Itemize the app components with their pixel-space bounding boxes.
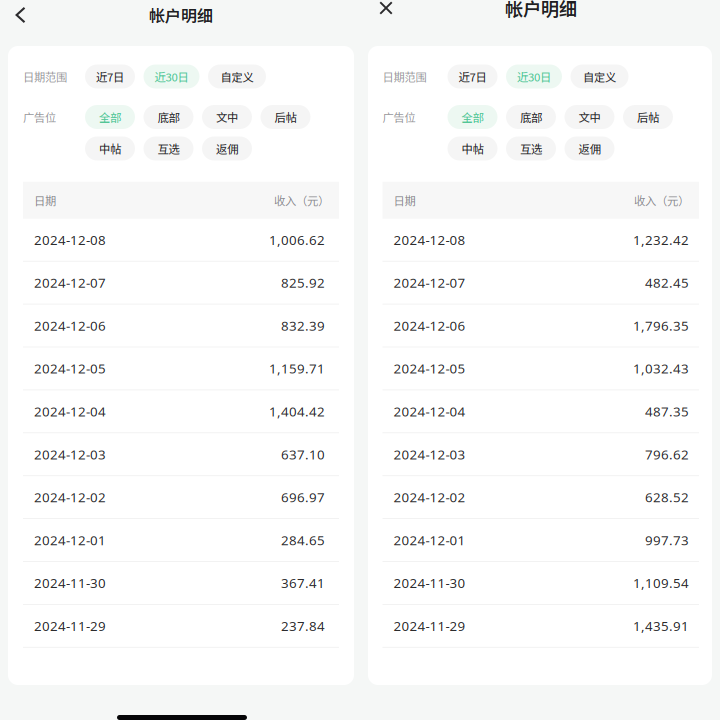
button[interactable]: 近7日 [85, 64, 135, 88]
staticText: 1,109.54 [633, 574, 689, 592]
staticText: 中帖 [99, 140, 121, 157]
staticText: 自定义 [220, 68, 253, 85]
button[interactable]: 底部 [143, 105, 193, 129]
staticText: 1,006.62 [269, 231, 325, 249]
button[interactable]: 文中 [564, 105, 614, 129]
staticText: 日期范围 [382, 68, 426, 85]
button[interactable]: 自定义 [570, 64, 628, 88]
staticText: 返佣 [578, 140, 600, 157]
button[interactable]: 近30日 [506, 64, 562, 88]
staticText: 2024-12-03 [34, 445, 106, 463]
staticText: 2024-12-01 [393, 531, 465, 549]
button[interactable]: 互选 [506, 136, 556, 160]
button[interactable]: 全部 [85, 105, 135, 129]
button[interactable]: 近30日 [143, 64, 199, 88]
staticText: 收入（元） [274, 192, 329, 208]
staticText: 796.62 [645, 445, 689, 463]
button[interactable]: Close [371, 0, 401, 21]
staticText: 637.10 [281, 445, 325, 463]
staticText: 1,404.42 [269, 402, 325, 420]
staticText: 底部 [520, 109, 542, 125]
staticText: 2024-12-02 [34, 488, 106, 506]
staticText: 2024-12-03 [393, 445, 465, 463]
staticText: 2024-11-29 [393, 617, 465, 635]
staticText: 2024-12-05 [34, 359, 106, 378]
staticText: 1,796.35 [633, 316, 689, 335]
staticText: 后帖 [637, 109, 659, 125]
staticText: 全部 [461, 109, 483, 125]
staticText: 日期范围 [23, 68, 67, 85]
staticText: 近7日 [458, 68, 486, 85]
staticText: 2024-12-08 [34, 231, 106, 249]
staticText: 帐户明细 [505, 0, 577, 21]
staticText: 互选 [520, 140, 542, 157]
staticText: 2024-12-07 [393, 274, 465, 292]
button[interactable]: 全部 [447, 105, 497, 129]
staticText: 底部 [157, 109, 179, 125]
staticText: 日期 [34, 192, 56, 208]
button[interactable]: 自定义 [208, 64, 266, 88]
button[interactable]: 中帖 [85, 136, 135, 160]
staticText: 近30日 [517, 68, 551, 85]
staticText: 825.92 [281, 274, 325, 292]
staticText: 2024-11-29 [34, 617, 106, 635]
staticText: 2024-12-02 [393, 488, 465, 506]
staticText: 2024-11-30 [34, 574, 106, 592]
staticText: 2024-12-01 [34, 531, 106, 549]
staticText: 互选 [157, 140, 179, 157]
staticText: 2024-11-30 [393, 574, 465, 592]
staticText: 返佣 [216, 140, 238, 157]
staticText: 237.84 [281, 617, 325, 635]
staticText: 482.45 [645, 274, 689, 292]
staticText: 近30日 [154, 68, 188, 85]
button[interactable]: 互选 [143, 136, 193, 160]
staticText: 全部 [99, 109, 121, 125]
staticText: 2024-12-06 [393, 316, 465, 335]
staticText: 997.73 [645, 531, 689, 549]
staticText: 近7日 [96, 68, 124, 85]
button[interactable]: 中帖 [447, 136, 497, 160]
staticText: 487.35 [645, 402, 689, 420]
staticText: 1,032.43 [633, 359, 689, 378]
staticText: 广告位 [382, 109, 415, 125]
staticText: 628.52 [645, 488, 689, 506]
staticText: 2024-12-06 [34, 316, 106, 335]
staticText: 2024-12-08 [393, 231, 465, 249]
staticText: 广告位 [23, 109, 56, 125]
staticText: 收入（元） [634, 192, 689, 208]
staticText: 367.41 [281, 574, 325, 592]
button[interactable]: 近7日 [447, 64, 497, 88]
staticText: 帐户明细 [149, 3, 213, 27]
staticText: 1,435.91 [633, 617, 689, 635]
staticText: 后帖 [274, 109, 296, 125]
staticText: 1,159.71 [269, 359, 325, 378]
button[interactable]: 底部 [506, 105, 556, 129]
staticText: 自定义 [583, 68, 616, 85]
staticText: 2024-12-04 [34, 402, 106, 420]
staticText: 文中 [216, 109, 238, 125]
button[interactable]: 返佣 [202, 136, 252, 160]
button[interactable]: 文中 [202, 105, 252, 129]
button[interactable]: 后帖 [260, 105, 310, 129]
staticText: 284.65 [281, 531, 325, 549]
staticText: 832.39 [281, 316, 325, 335]
staticText: 1,232.42 [633, 231, 689, 249]
button[interactable]: 后帖 [623, 105, 673, 129]
staticText: 2024-12-04 [393, 402, 465, 420]
staticText: 日期 [393, 192, 415, 208]
staticText: 2024-12-05 [393, 359, 465, 378]
staticText: 文中 [578, 109, 600, 125]
staticText: 696.97 [281, 488, 325, 506]
button[interactable]: 返佣 [564, 136, 614, 160]
staticText: 2024-12-07 [34, 274, 106, 292]
staticText: 中帖 [461, 140, 483, 157]
button[interactable]: Back [5, 2, 35, 28]
